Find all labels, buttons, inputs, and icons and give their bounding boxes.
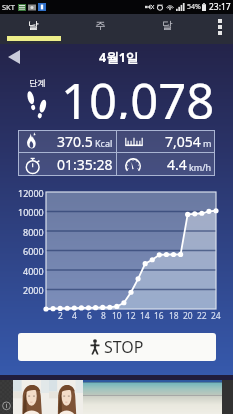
staticText: 18	[169, 310, 179, 322]
staticText: 4.4	[167, 155, 187, 174]
staticText: 10	[112, 310, 122, 322]
staticText: 6000	[23, 245, 44, 257]
button[interactable]: Previous day	[2, 45, 26, 69]
staticText: 2	[58, 310, 63, 322]
staticText: 23:17	[209, 1, 231, 13]
button[interactable]: 370.5	[18, 130, 116, 152]
staticText: 8000	[23, 226, 44, 238]
button[interactable]: 4.4	[117, 153, 215, 176]
staticText: 4	[72, 310, 77, 322]
button[interactable]: More options	[201, 14, 233, 44]
staticText: 22	[197, 310, 207, 322]
button[interactable]: Add photo	[0, 380, 13, 414]
staticText: 12000	[18, 187, 44, 199]
staticText: STOP	[104, 336, 144, 358]
staticText: 20	[183, 310, 193, 322]
staticText: 14	[140, 310, 150, 322]
staticText: 54%	[187, 2, 201, 12]
staticText: 주	[95, 19, 106, 32]
staticText: 단계	[29, 78, 46, 89]
staticText: 10,078	[61, 67, 215, 119]
staticText: 달	[162, 19, 173, 32]
staticText: 24	[211, 310, 221, 322]
staticText: m	[203, 137, 212, 149]
staticText: Kcal	[95, 137, 113, 149]
staticText: 10000	[18, 206, 44, 218]
button[interactable]: 주	[67, 14, 134, 44]
staticText: 370.5	[57, 132, 93, 151]
button[interactable]: 7,054	[117, 130, 215, 152]
staticText: 6	[87, 310, 92, 322]
button[interactable]: STOP	[18, 333, 216, 361]
staticText: 2000	[23, 284, 44, 296]
button[interactable]: 달	[134, 14, 201, 44]
button[interactable]: 01:35:28	[18, 153, 116, 176]
staticText: SKT	[2, 2, 15, 12]
staticText: 8	[101, 310, 106, 322]
button[interactable]	[83, 380, 222, 414]
staticText: 날	[28, 19, 39, 32]
staticText: 01:35:28	[57, 155, 113, 174]
staticText: 4월1일	[99, 49, 139, 66]
staticText: 16	[154, 310, 164, 322]
button[interactable]: 날	[0, 14, 67, 44]
button[interactable]	[49, 380, 83, 414]
staticText: km/h	[189, 161, 212, 173]
staticText: 7,054	[165, 132, 201, 151]
staticText: 4000	[23, 265, 44, 277]
staticText: 12	[126, 310, 136, 322]
button[interactable]	[13, 380, 49, 414]
